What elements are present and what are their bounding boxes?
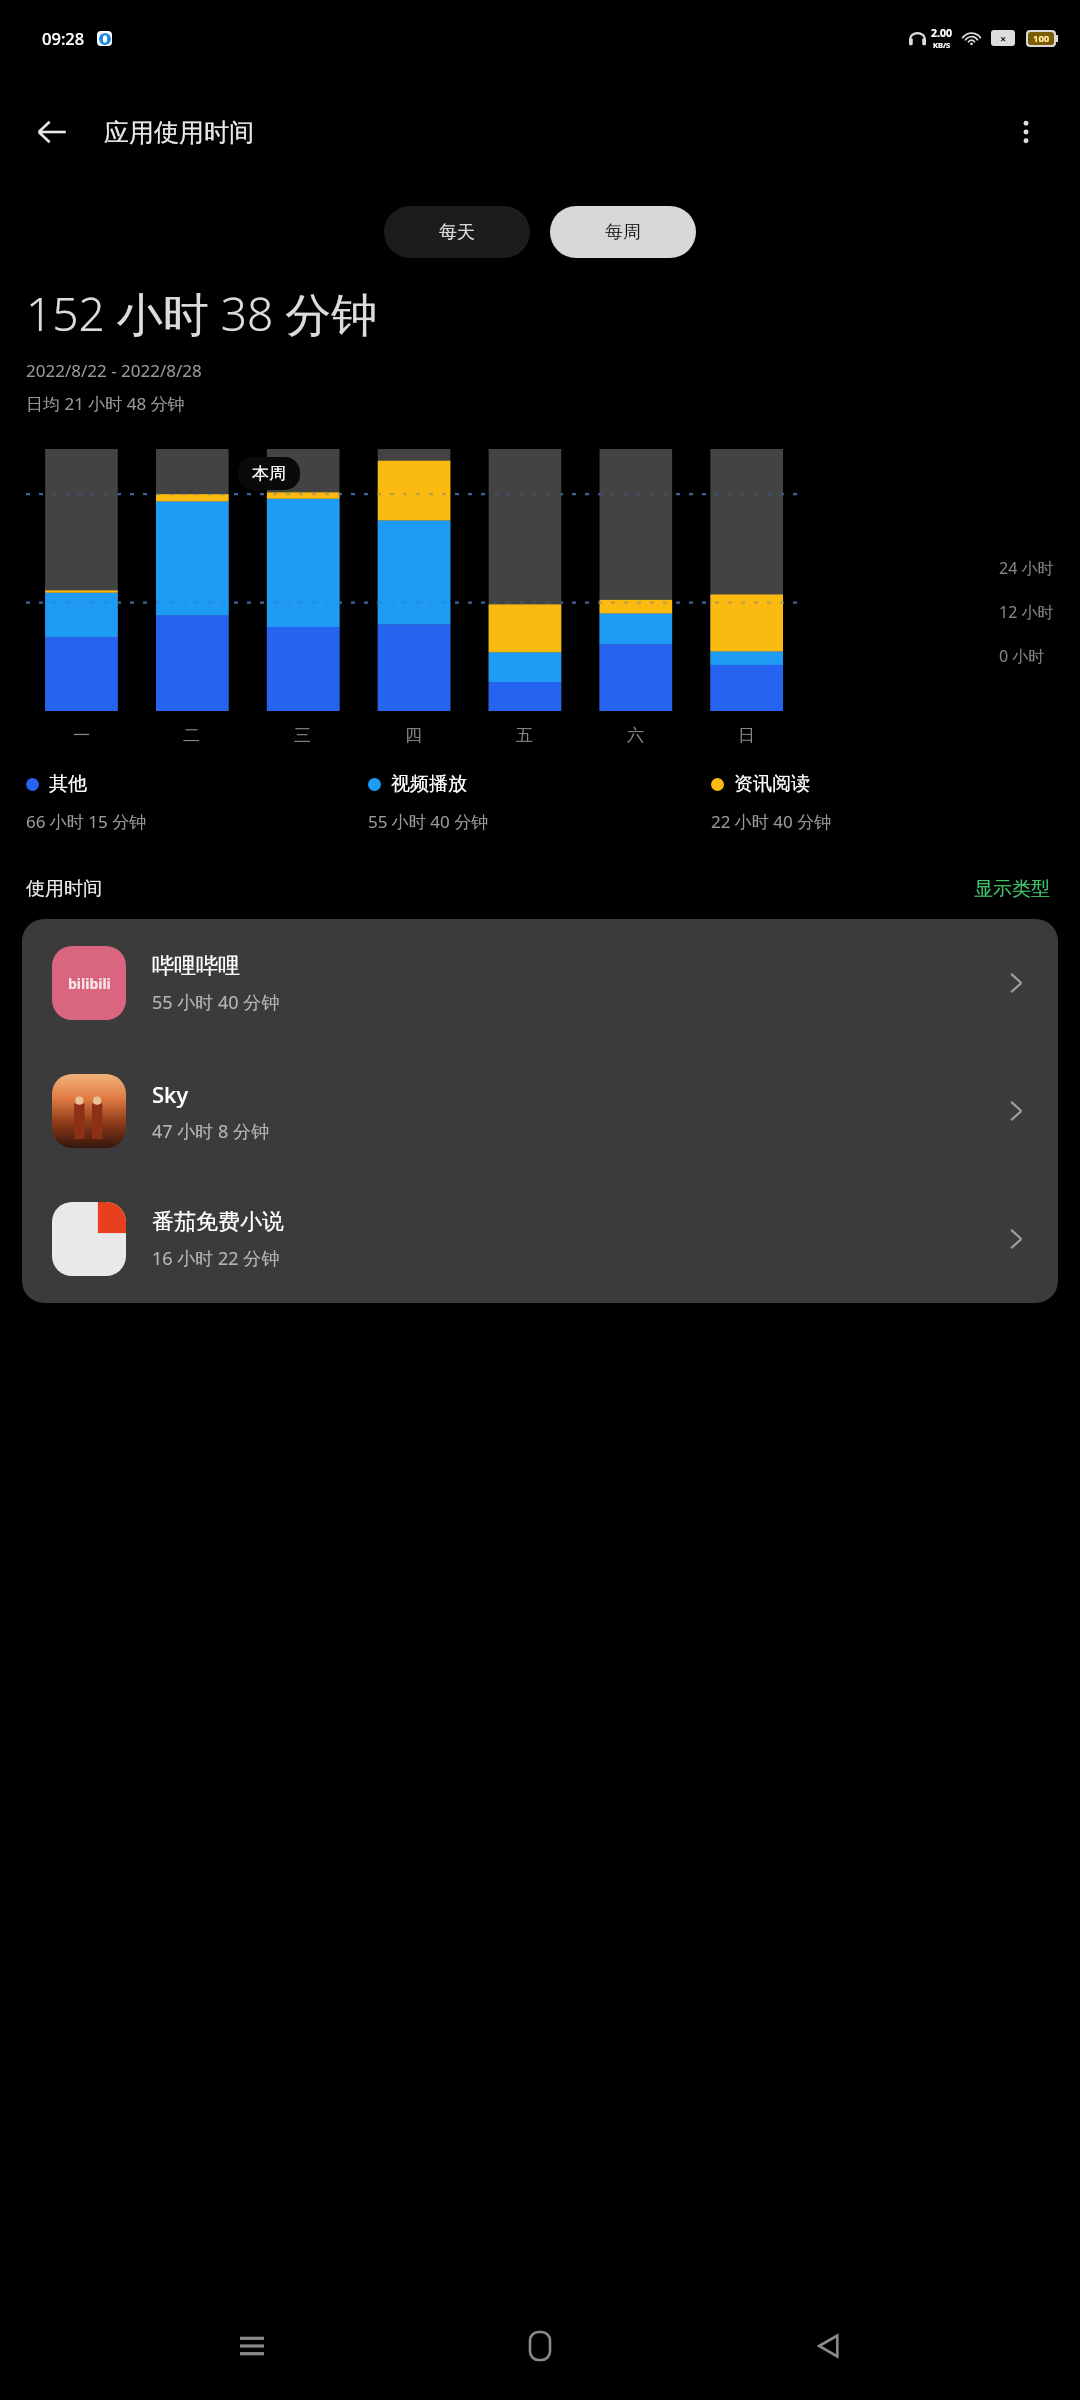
staticText: 55 小时 40 分钟 [152,990,280,1015]
staticText: 番茄免费小说 [152,1208,284,1236]
staticText: 日 [738,725,755,746]
staticText: 16 小时 22 分钟 [152,1246,280,1271]
staticText: 六 [627,725,644,746]
staticText: 哔哩哔哩 [152,952,240,980]
button[interactable]: Recents [215,2309,289,2383]
staticText: Sky [152,1079,189,1109]
button[interactable]: Back [792,2309,866,2383]
staticText: 显示类型 [974,877,1050,901]
button[interactable]: 其他 [26,772,368,833]
staticText: 每天 [439,221,475,244]
staticText: 日均 21 小时 48 分钟 [26,392,185,415]
staticText: 五 [516,725,533,746]
staticText: 应用使用时间 [104,117,254,148]
staticText: 2.00 [931,26,952,40]
staticText: 其他 [49,772,87,796]
button[interactable]: Back [24,104,80,160]
staticText: 一 [73,725,90,746]
staticText: 100 [1033,32,1050,45]
staticText: 四 [405,725,422,746]
staticText: 三 [294,725,311,746]
staticText: 66 小时 15 分钟 [26,810,147,833]
staticText: 22 小时 40 分钟 [711,810,832,833]
staticText: 0 小时 [999,645,1045,667]
staticText: 资讯阅读 [734,772,810,796]
staticText: KB/S [933,40,951,50]
staticText: 2022/8/22 - 2022/8/28 [26,359,202,382]
staticText: 24 小时 [999,557,1054,579]
button[interactable]: 每天 [384,206,530,258]
staticText: 55 小时 40 分钟 [368,810,489,833]
button[interactable]: More options [998,104,1054,160]
button[interactable]: 视频播放 [368,772,711,833]
staticText: 二 [183,725,200,746]
button[interactable]: bilibili [22,919,1058,1047]
staticText: 12 小时 [999,601,1054,623]
button[interactable]: 显示类型 [970,873,1054,905]
button[interactable]: 番茄免费小说 [22,1175,1058,1303]
staticText: 本周 [252,463,286,484]
staticText: 47 小时 8 分钟 [152,1119,269,1144]
staticText: bilibili [68,974,111,993]
button[interactable]: Sky [22,1047,1058,1175]
staticText: 152 小时 38 分钟 [26,282,378,345]
staticText: 09:28 [42,27,85,49]
button[interactable]: Home [503,2309,577,2383]
staticText: 视频播放 [391,772,467,796]
staticText: × [1000,31,1007,46]
staticText: 使用时间 [26,877,102,901]
button[interactable]: 每周 [550,206,696,258]
staticText: 每周 [605,221,641,244]
button[interactable]: 资讯阅读 [711,772,1054,833]
